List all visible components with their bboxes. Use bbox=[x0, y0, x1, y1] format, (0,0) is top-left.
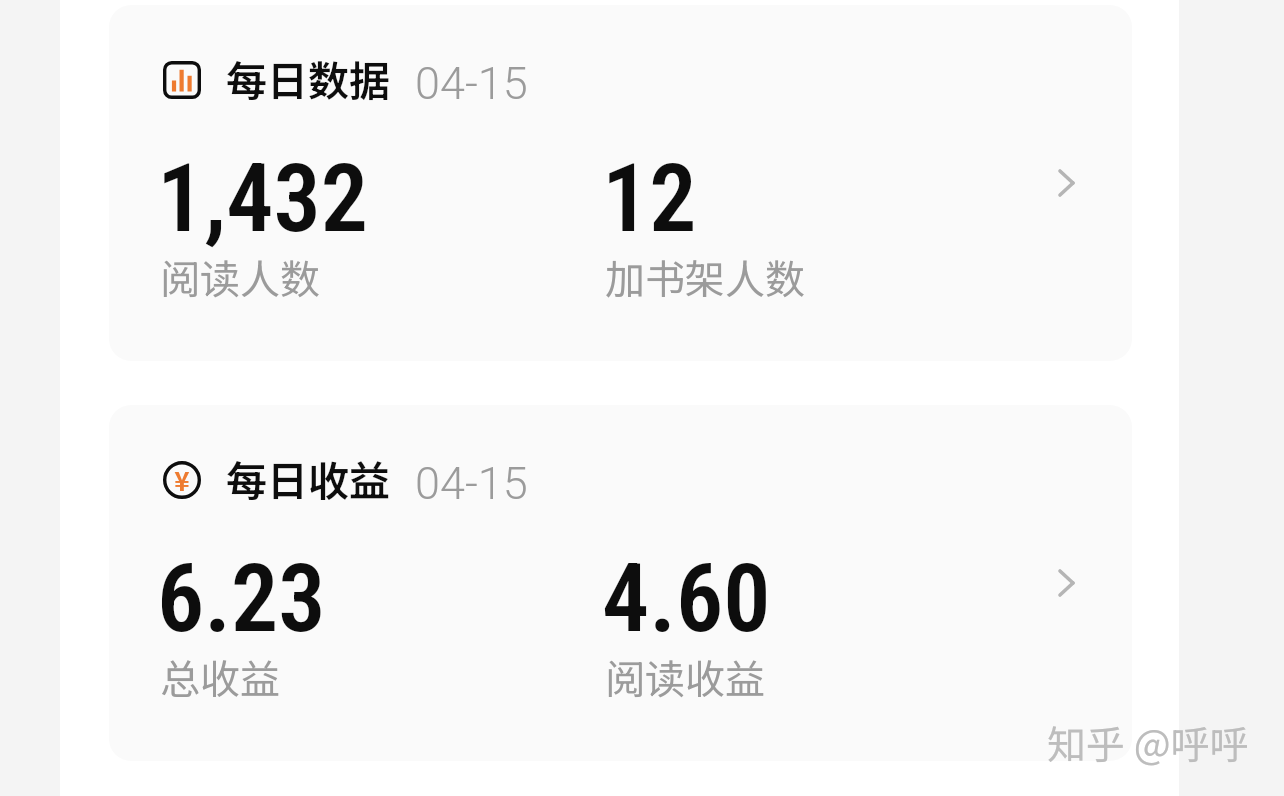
staticText: 知乎 @呼呼 bbox=[1047, 714, 1249, 770]
button[interactable]: 每日数据 bbox=[109, 5, 1132, 361]
staticText: 1,432 bbox=[157, 144, 369, 254]
other: 每日收益 bbox=[163, 461, 201, 499]
staticText: 每日数据 bbox=[226, 48, 390, 107]
staticText: 每日收益 bbox=[226, 448, 390, 507]
staticText: ¥ bbox=[174, 461, 190, 499]
button[interactable]: 查看详情 bbox=[1043, 158, 1093, 208]
staticText: 12 bbox=[602, 144, 697, 254]
staticText: 04-15 bbox=[415, 57, 528, 110]
staticText: 4.60 bbox=[602, 544, 771, 654]
button[interactable]: 每日收益 bbox=[109, 405, 1132, 761]
staticText: 阅读人数 bbox=[160, 248, 320, 306]
staticText: 6.23 bbox=[157, 544, 326, 654]
staticText: 阅读收益 bbox=[605, 648, 765, 706]
button[interactable]: 查看详情 bbox=[1043, 558, 1093, 608]
staticText: 总收益 bbox=[160, 648, 280, 706]
staticText: 04-15 bbox=[415, 457, 528, 510]
other: 每日数据 bbox=[163, 61, 201, 99]
staticText: 加书架人数 bbox=[605, 248, 805, 306]
